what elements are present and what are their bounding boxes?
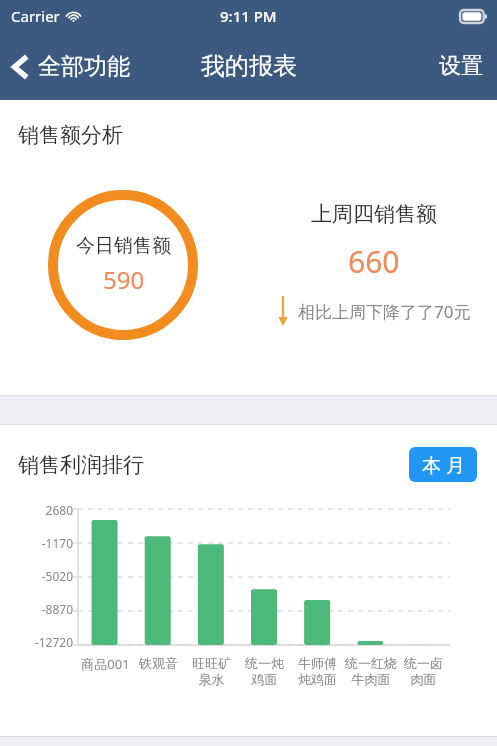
staticText: 牛师傅 炖鸡面 xyxy=(298,655,337,688)
staticText: -12720 xyxy=(34,634,73,650)
staticText: 今日销售额 xyxy=(76,234,171,258)
staticText: 商品001 xyxy=(81,655,130,673)
staticText: 统一炖 鸡面 xyxy=(245,655,284,688)
staticText: 相比上周下降了了70元 xyxy=(298,300,471,323)
staticText: 本 月 xyxy=(422,452,465,478)
staticText: 我的报表 xyxy=(201,51,297,81)
staticText: 统一红烧 牛肉面 xyxy=(345,655,397,688)
staticText: 9:11 PM xyxy=(220,6,277,26)
staticText: 全部功能 xyxy=(38,52,130,81)
staticText: -5020 xyxy=(41,568,73,584)
button[interactable]: 全部功能 xyxy=(0,46,138,87)
staticText: 旺旺矿 泉水 xyxy=(192,655,231,688)
staticText: -1170 xyxy=(41,535,73,551)
staticText: 销售利润排行 xyxy=(18,452,144,478)
staticText: 销售额分析 xyxy=(18,122,123,148)
staticText: 660 xyxy=(348,241,400,282)
staticText: 铁观音 xyxy=(139,655,178,671)
staticText: 统一卤 肉面 xyxy=(404,655,443,688)
button[interactable]: 本 月 xyxy=(409,447,477,482)
staticText: Carrier xyxy=(11,6,60,26)
staticText: 设置 xyxy=(439,52,483,80)
staticText: -8870 xyxy=(41,601,73,617)
staticText: 590 xyxy=(103,263,145,296)
button[interactable]: 设置 xyxy=(425,44,497,88)
staticText: 2680 xyxy=(45,502,73,518)
staticText: 上周四销售额 xyxy=(311,201,437,227)
